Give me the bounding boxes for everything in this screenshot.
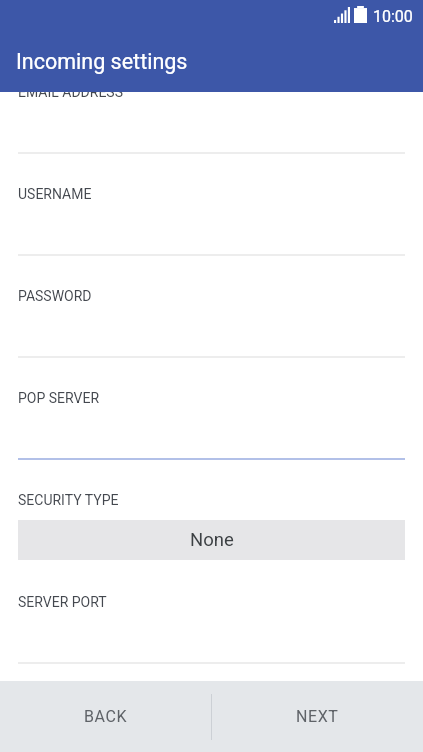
staticText: NEXT [296,707,339,726]
staticText: EMAIL ADDRESS [18,84,123,100]
staticText: Incoming settings [16,49,188,74]
staticText: BACK [84,707,128,726]
button[interactable]: None [18,520,405,560]
staticText: USERNAME [18,186,92,202]
button[interactable]: BACK [0,681,211,752]
button[interactable]: EMAIL ADDRESS [18,84,405,154]
other: Signal strength [334,7,350,23]
button[interactable]: PASSWORD [18,288,405,358]
staticText: 10:00 [373,7,413,26]
staticText: POP SERVER [18,390,100,406]
button[interactable]: NEXT [212,681,423,752]
button[interactable]: USERNAME [18,186,405,256]
button[interactable]: POP SERVER [18,390,405,460]
other: Battery [354,6,367,23]
button[interactable]: SERVER PORT [18,594,405,664]
staticText: SERVER PORT [18,594,107,610]
staticText: SECURITY TYPE [18,492,119,508]
staticText: PASSWORD [18,288,92,304]
staticText: None [190,529,234,551]
